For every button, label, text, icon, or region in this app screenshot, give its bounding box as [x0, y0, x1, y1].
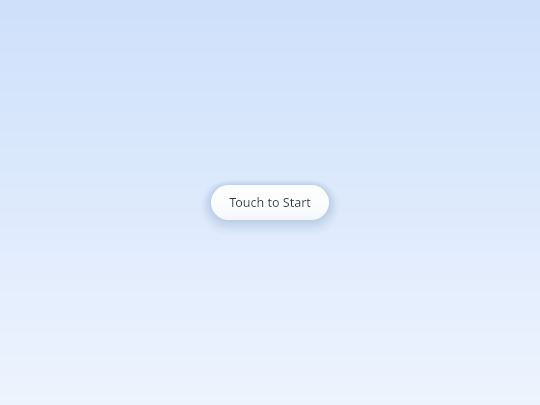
staticText: Touch to Start: [229, 194, 311, 211]
button[interactable]: Touch to Start: [211, 185, 329, 220]
